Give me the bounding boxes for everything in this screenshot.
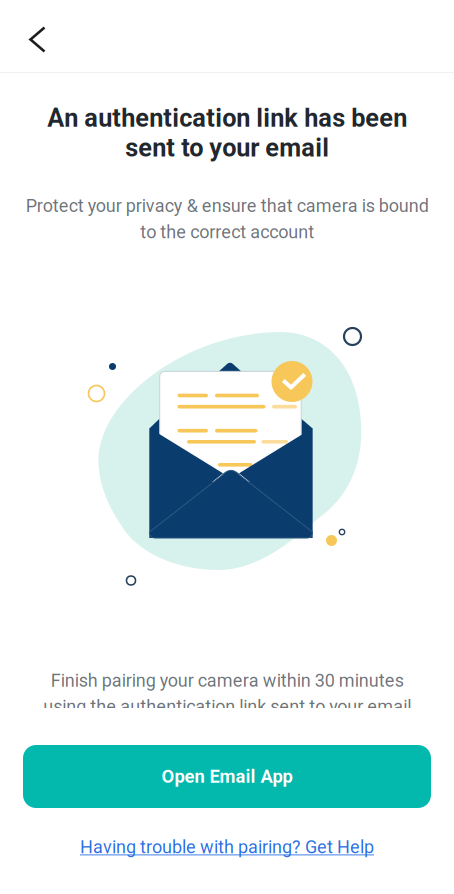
button[interactable]: Open Email App (23, 745, 431, 808)
button[interactable]: Having trouble with pairing? Get Help (77, 830, 377, 864)
staticText: Finish pairing your camera within 30 min… (43, 670, 411, 717)
staticText: Having trouble with pairing? Get Help (80, 836, 374, 858)
button[interactable]: Back (13, 13, 61, 65)
staticText: Protect your privacy & ensure that camer… (25, 195, 428, 243)
staticText: An authentication link has been sent to … (47, 103, 407, 163)
staticText: Open Email App (161, 766, 292, 787)
